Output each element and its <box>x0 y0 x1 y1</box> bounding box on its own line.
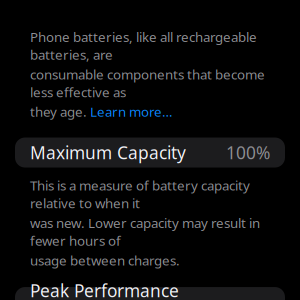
staticText: Peak Performance Capability <box>30 279 179 300</box>
staticText: 100% <box>226 141 270 164</box>
staticText: they age. <box>30 103 90 120</box>
staticText: Learn more… <box>90 103 173 120</box>
staticText: Maximum Capacity <box>30 141 186 164</box>
staticText: Phone batteries, like all rechargeable b… <box>30 28 257 63</box>
staticText: consumable components that become less e… <box>30 65 265 101</box>
button[interactable]: Learn more… <box>90 103 173 120</box>
staticText: usage between charges. <box>30 251 180 269</box>
staticText: was new. Lower capacity may result in fe… <box>30 214 260 249</box>
button[interactable]: Peak Performance Capability <box>15 287 285 300</box>
staticText: This is a measure of battery capacity re… <box>30 176 250 212</box>
button[interactable]: Maximum Capacity <box>15 137 285 167</box>
